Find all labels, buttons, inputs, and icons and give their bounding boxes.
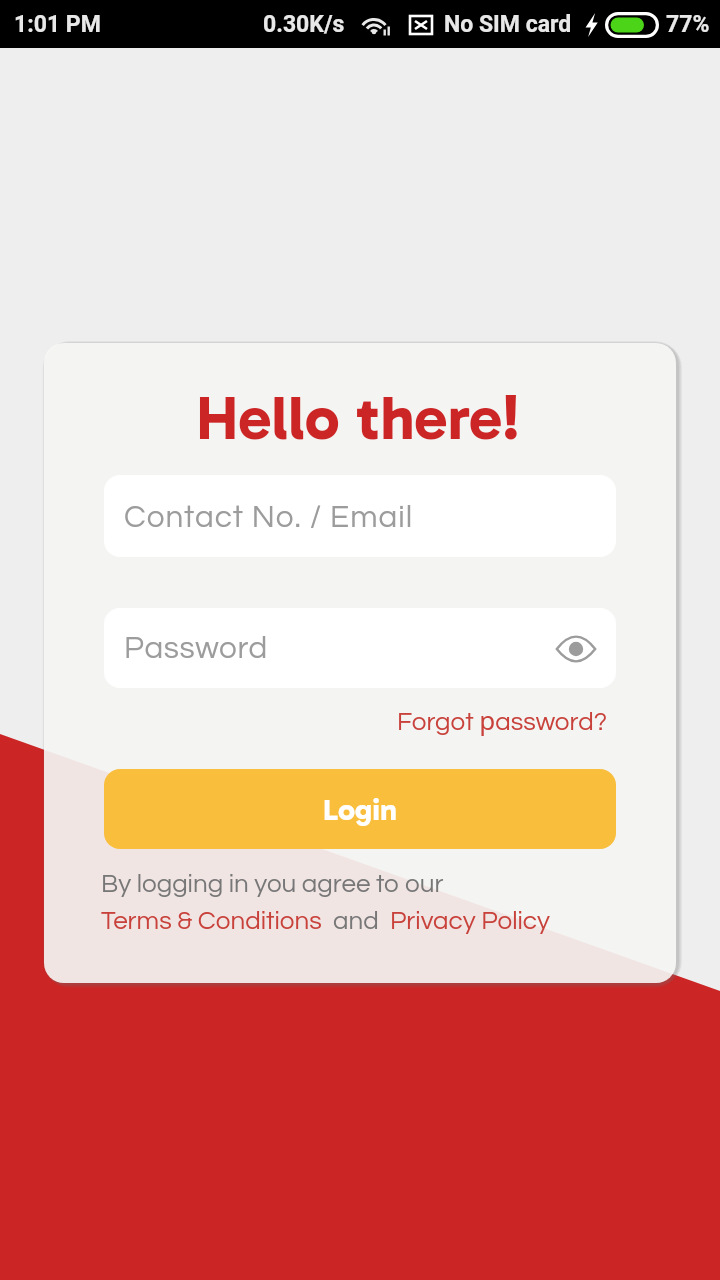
staticText: 77% — [666, 11, 710, 38]
staticText: 0.30K/s — [263, 11, 345, 38]
staticText: Password — [124, 632, 268, 664]
button[interactable]: Password — [104, 608, 616, 688]
staticText: No SIM card — [444, 11, 572, 38]
button[interactable]: Contact No. / Email — [104, 475, 616, 557]
staticText: Privacy Policy — [390, 908, 550, 935]
staticText: and — [322, 908, 390, 935]
staticText: Forgot password? — [397, 702, 607, 737]
button[interactable]: Login — [104, 769, 616, 849]
button[interactable]: Privacy Policy — [390, 908, 550, 935]
staticText: By logging in you agree to our — [101, 871, 444, 898]
staticText: Hello there! — [42, 381, 674, 455]
button[interactable]: Forgot password? — [397, 702, 607, 737]
staticText: Login — [323, 791, 397, 828]
staticText: Terms & Conditions — [101, 908, 322, 935]
button[interactable]: Terms & Conditions — [101, 908, 322, 935]
staticText: Contact No. / Email — [124, 501, 414, 533]
button[interactable]: Show password — [554, 627, 597, 670]
staticText: 1:01 PM — [14, 11, 101, 38]
